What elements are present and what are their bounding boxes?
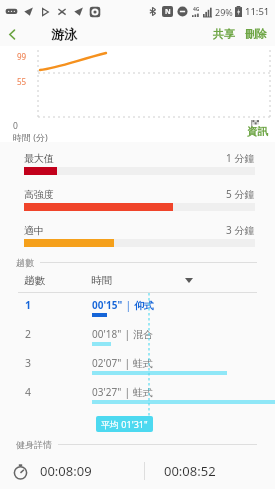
staticText: 時間 (分) [13, 131, 48, 143]
staticText: 3 分鐘 [226, 223, 255, 237]
button[interactable]: 高強度 [0, 182, 275, 218]
staticText: 4G [193, 6, 200, 13]
button[interactable]: 1 [0, 293, 275, 322]
staticText: | [123, 298, 134, 312]
staticText: 蛙式 [133, 386, 153, 399]
button[interactable]: Back [0, 22, 24, 46]
staticText: 蛙式 [133, 357, 153, 370]
button[interactable]: 適中 [0, 218, 275, 254]
button[interactable]: 最大值 [0, 146, 275, 182]
staticText: 資訊 [247, 125, 268, 138]
staticText: 4 [25, 385, 32, 399]
button[interactable]: 資訊 [240, 123, 275, 140]
staticText: | [122, 327, 133, 341]
staticText: N [165, 7, 171, 17]
staticText: 健身詳情 [16, 439, 52, 450]
staticText: 最大值 [24, 152, 54, 165]
staticText: 適中 [24, 224, 44, 237]
staticText: 00:08:09 [40, 462, 92, 480]
staticText: 0 [13, 120, 18, 132]
button[interactable]: 刪除 [240, 23, 275, 45]
staticText: 29% [215, 6, 233, 18]
button[interactable]: 3 [0, 351, 275, 380]
staticText: 02'07" [92, 356, 122, 370]
button[interactable]: 共享 [208, 23, 240, 45]
staticText: 00'15" [92, 298, 123, 312]
staticText: 5 分鐘 [226, 187, 255, 201]
staticText: | [122, 356, 133, 370]
staticText: 11:51 [245, 5, 270, 18]
staticText: 03'27" [92, 385, 122, 399]
staticText: 共享 [213, 27, 235, 41]
staticText: 刪除 [245, 27, 267, 41]
staticText: | [122, 385, 133, 399]
staticText: 仰式 [134, 299, 154, 312]
staticText: 2 [25, 327, 32, 341]
button[interactable]: 00:08:09 [0, 456, 275, 486]
staticText: 趟數 [16, 257, 34, 268]
button[interactable]: 4 [0, 380, 275, 409]
staticText: 1 分鐘 [226, 151, 255, 165]
staticText: 高強度 [24, 188, 54, 201]
staticText: 1 [25, 298, 32, 312]
staticText: 99 [17, 51, 27, 62]
button[interactable]: 2 [0, 322, 275, 351]
staticText: 00'18" [92, 327, 122, 341]
staticText: 時間 [91, 274, 112, 287]
staticText: 00:08:52 [164, 462, 216, 480]
staticText: 平均 01'31" [101, 418, 148, 430]
staticText: 趟數 [24, 274, 45, 287]
staticText: 混合 [133, 328, 153, 341]
staticText: 游泳 [51, 26, 77, 42]
button[interactable]: Sort [181, 272, 197, 288]
staticText: 55 [17, 76, 27, 87]
staticText: 3 [25, 356, 32, 370]
